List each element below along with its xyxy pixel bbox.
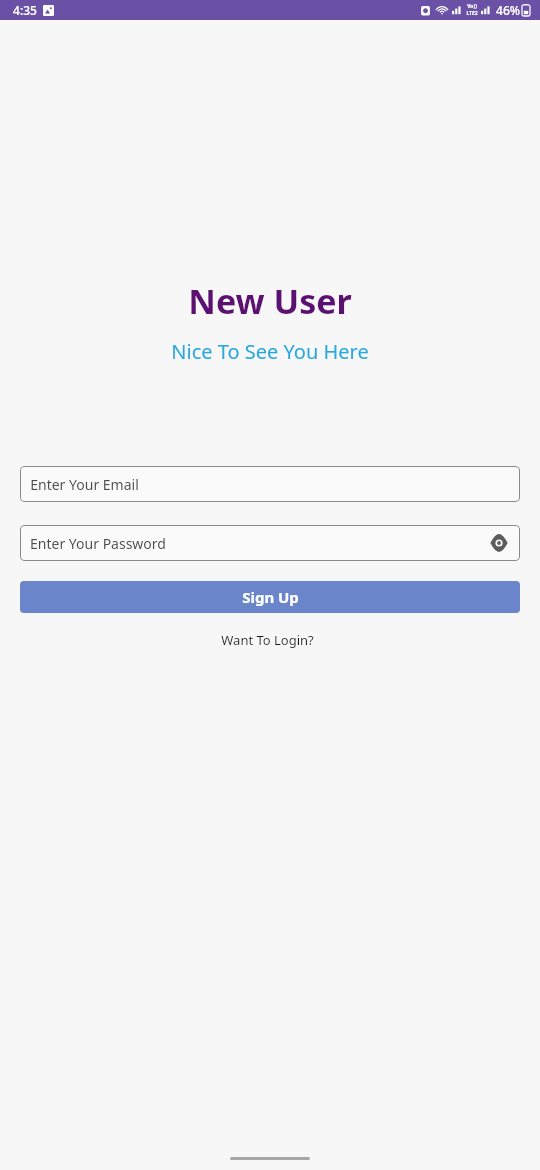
button[interactable]: Enter Your Password [20,525,520,561]
staticText: Nice To See You Here [0,338,540,365]
button[interactable]: Want To Login? [217,629,318,651]
staticText: Sign Up [242,587,299,607]
staticText: Vo)) [467,3,477,10]
button[interactable]: Enter Your Email [20,466,520,502]
button[interactable]: Show password [486,530,512,556]
staticText: 4:35 [13,2,37,18]
staticText: 46% [496,2,520,18]
staticText: LTE2 [466,10,478,17]
button[interactable]: Sign Up [20,581,520,613]
staticText: Enter Your Email [30,475,139,494]
staticText: Want To Login? [221,631,314,649]
staticText: Enter Your Password [30,534,166,553]
staticText: New User [0,278,540,324]
